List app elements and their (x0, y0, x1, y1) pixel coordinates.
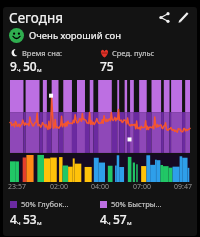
staticText: 9 (10, 58, 17, 74)
staticText: м (37, 219, 42, 227)
staticText: 07:00 (133, 182, 151, 192)
staticText: м (37, 66, 42, 74)
staticText: Очень хороший сон (29, 29, 122, 42)
staticText: ч (17, 219, 21, 227)
button[interactable]: Edit (174, 8, 193, 27)
staticText: ч (107, 219, 111, 227)
staticText: 4 (10, 211, 17, 227)
staticText: 50 (23, 58, 37, 74)
staticText: Время сна: (22, 48, 63, 58)
staticText: м (127, 219, 132, 227)
staticText: 23:57 (8, 182, 26, 192)
staticText: 75 (100, 58, 114, 74)
staticText: ч (17, 66, 21, 74)
staticText: 4 (100, 211, 107, 227)
staticText: 04:00 (91, 182, 109, 192)
staticText: Сегодня (9, 9, 155, 27)
staticText: 53 (23, 211, 37, 227)
staticText: 57 (113, 211, 127, 227)
staticText: 09:47 (174, 182, 192, 192)
button[interactable]: 50% Глубок… (10, 199, 100, 227)
button[interactable]: Очень хороший сон (9, 28, 191, 43)
button[interactable]: Share (155, 8, 174, 27)
staticText: 50% Глубок… (21, 199, 69, 209)
staticText: 50% Быстры… (111, 199, 162, 209)
button[interactable]: 50% Быстры… (100, 199, 191, 227)
staticText: Сред. пульс (112, 48, 155, 58)
staticText: 02:00 (50, 182, 68, 192)
